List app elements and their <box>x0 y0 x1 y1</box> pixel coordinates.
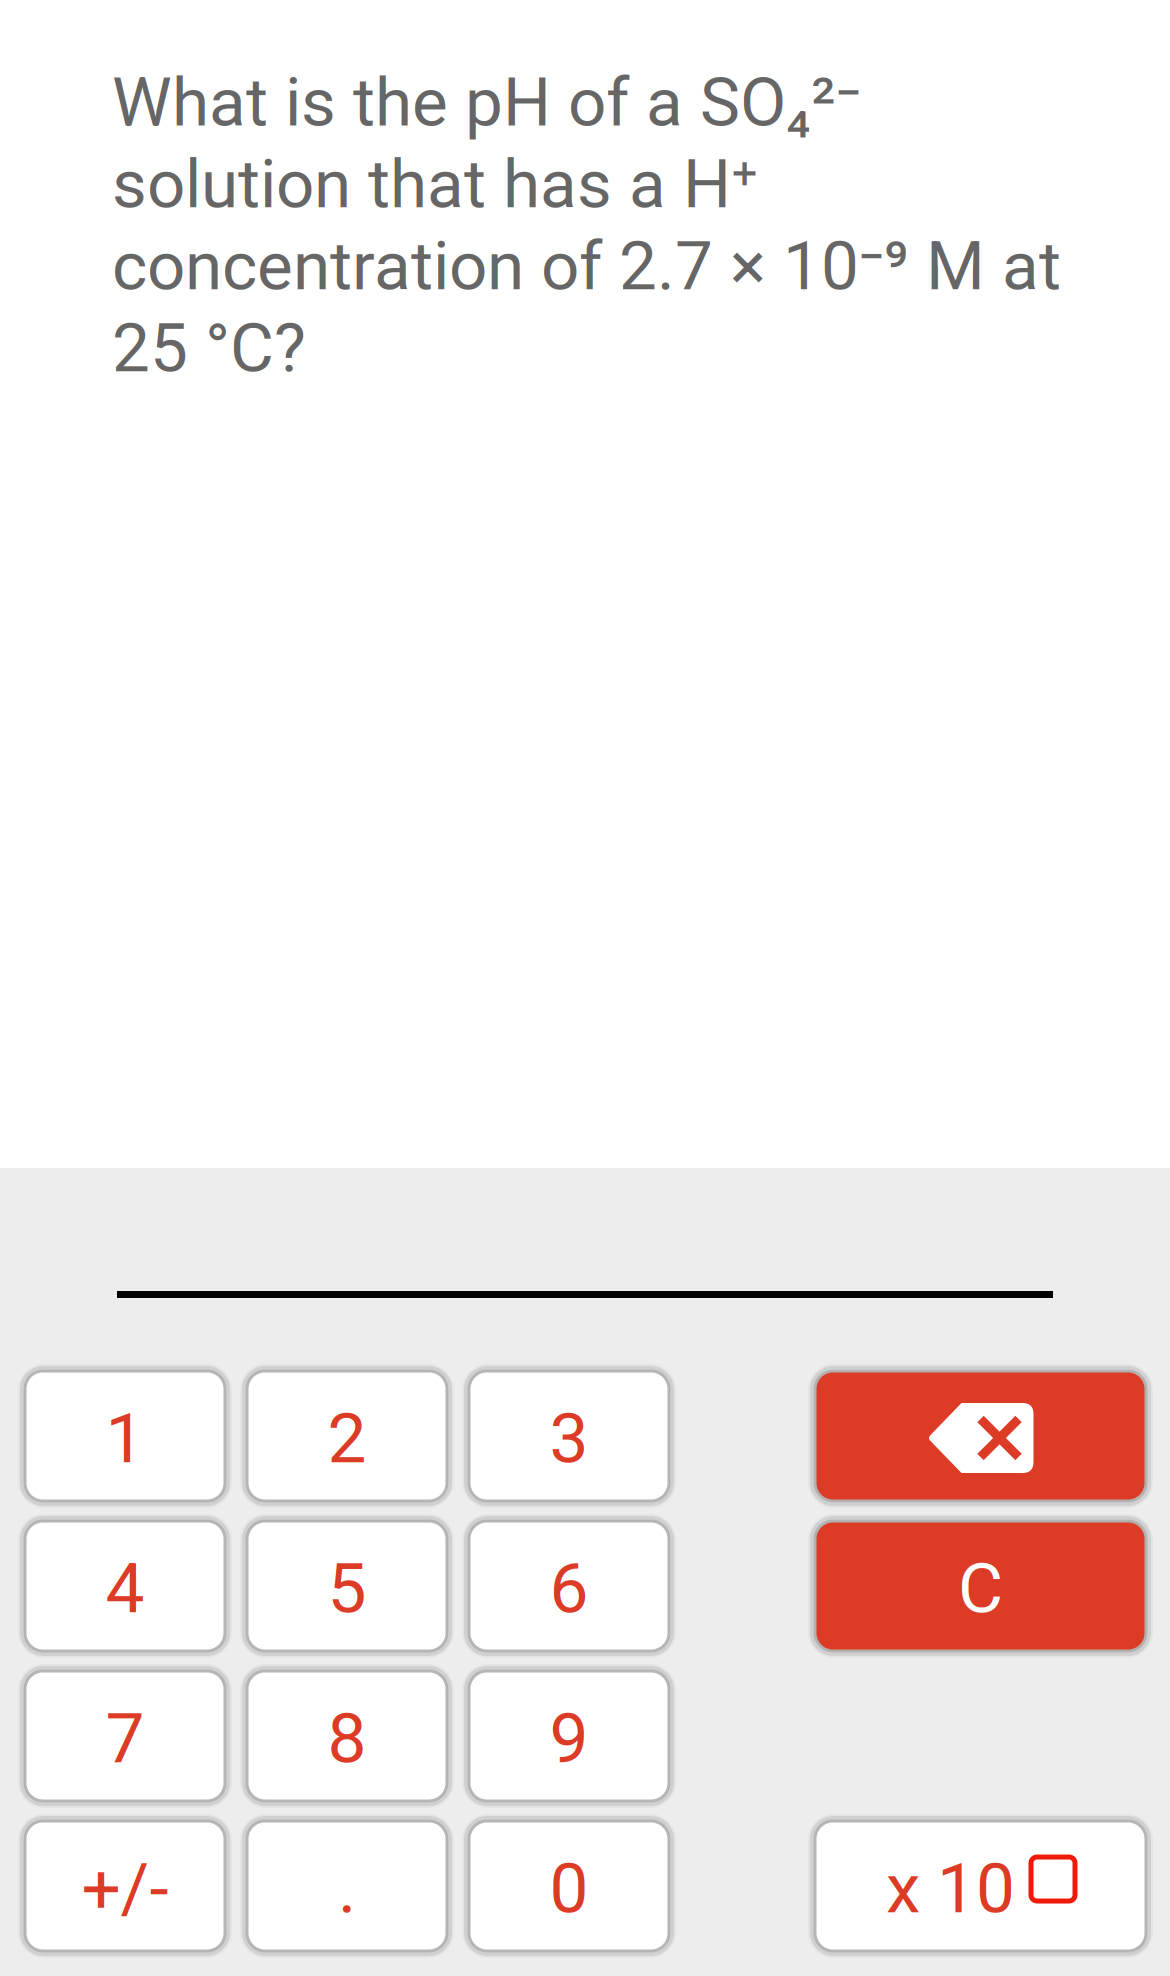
staticText: +/- <box>81 1848 168 1929</box>
button[interactable]: Clear <box>815 1521 1146 1651</box>
staticText: 2 <box>327 1398 366 1479</box>
button[interactable]: 7 <box>25 1671 225 1801</box>
button[interactable]: +/- <box>25 1821 225 1951</box>
staticText: 4 <box>105 1548 144 1629</box>
button[interactable]: 1 <box>25 1371 225 1501</box>
button[interactable]: 6 <box>469 1521 669 1651</box>
button[interactable]: . <box>247 1821 447 1951</box>
button[interactable]: 3 <box>469 1371 669 1501</box>
button[interactable]: 2 <box>247 1371 447 1501</box>
staticText: C <box>958 1548 1003 1629</box>
staticText: 9 <box>549 1698 588 1779</box>
staticText: 8 <box>327 1698 366 1779</box>
staticText: x 10 <box>886 1848 1015 1929</box>
staticText: 1 <box>105 1398 144 1479</box>
button[interactable]: 0 <box>469 1821 669 1951</box>
staticText: . <box>338 1848 356 1929</box>
staticText: 3 <box>549 1398 588 1479</box>
button[interactable]: Times ten to the power of <box>815 1821 1146 1951</box>
staticText: 0 <box>549 1848 588 1929</box>
button[interactable]: 5 <box>247 1521 447 1651</box>
staticText: 7 <box>105 1698 144 1779</box>
button[interactable]: 9 <box>469 1671 669 1801</box>
button[interactable]: 4 <box>25 1521 225 1651</box>
staticText: 5 <box>327 1548 366 1629</box>
staticText: What is the pH of a SO₄²⁻ solution that … <box>112 63 1061 388</box>
button[interactable]: 8 <box>247 1671 447 1801</box>
staticText: 6 <box>549 1548 588 1629</box>
button[interactable]: Backspace <box>815 1371 1146 1501</box>
